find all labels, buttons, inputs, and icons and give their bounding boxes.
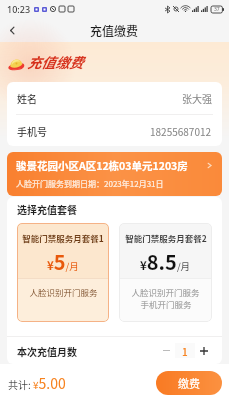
staticText: 张大强 (182, 91, 212, 105)
staticText: 人脸识别开门服务 (29, 286, 98, 298)
staticText: 本次充值月数 (17, 344, 77, 358)
staticText: ¥8.5/月 (140, 247, 191, 276)
button[interactable]: 智能门禁服务月套餐1 (17, 223, 109, 322)
staticText: 手机开门服务 (140, 298, 192, 310)
button[interactable]: 缴费 (156, 371, 222, 395)
staticText: 充值缴费 (90, 22, 139, 39)
staticText: ¥5/月 (47, 247, 79, 276)
button[interactable]: Increase (195, 343, 213, 358)
staticText: 手机号 (17, 124, 47, 138)
button[interactable]: 骏景花园小区A区12栋03单元1203房 (7, 152, 222, 196)
staticText: 人脸识别开门服务 (131, 286, 200, 298)
staticText: 人脸开门服务到期日期：2023年12月31日 (16, 178, 164, 190)
staticText: 共计: ¥5.00 (8, 373, 66, 393)
staticText: 智能门禁服务月套餐2 (125, 232, 207, 244)
staticText: 18255687012 (150, 124, 212, 138)
button[interactable]: Decrease (157, 343, 175, 358)
staticText: 智能门禁服务月套餐1 (22, 232, 104, 244)
staticText: 37 (214, 6, 220, 13)
staticText: 缴费 (178, 375, 200, 391)
button[interactable]: Back (0, 18, 24, 42)
staticText: 骏景花园小区A区12栋03单元1203房 (16, 158, 204, 173)
staticText: 选择充值套餐 (17, 202, 77, 216)
staticText: 充值缴费 (27, 52, 83, 72)
staticText: 10:23 (7, 3, 31, 15)
staticText: 1 (182, 344, 188, 358)
button[interactable]: 智能门禁服务月套餐2 (119, 223, 212, 322)
staticText: 姓名 (17, 91, 37, 105)
